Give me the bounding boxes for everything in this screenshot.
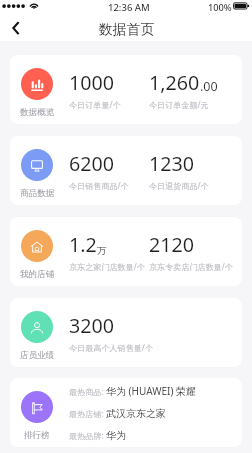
staticText: 今日订单金额/元 [149, 99, 209, 110]
staticText: 6200 [69, 150, 115, 177]
staticText: 我的店铺 [20, 269, 55, 280]
staticText: 华为 (HUAWEI) 荣耀Mate10... [106, 384, 239, 398]
staticText: 100% [208, 1, 232, 14]
staticText: 京东专卖店门店数量/个 [149, 261, 233, 272]
staticText: 今日销售商品/个 [69, 180, 129, 191]
staticText: 1.2 [69, 231, 97, 258]
staticText: 京东之家门店数量/个 [69, 261, 145, 272]
staticText: 武汉京东之家 [106, 407, 166, 420]
staticText: 1000 [69, 69, 115, 96]
staticText: 数据首页 [99, 21, 155, 38]
staticText: 最热品牌: [69, 430, 106, 441]
staticText: 3200 [69, 312, 115, 339]
staticText: 1,260 [149, 69, 200, 96]
staticText: 商品数据 [20, 188, 55, 199]
button[interactable]: 商品数据 [10, 136, 242, 205]
button[interactable]: 我的店铺 [10, 217, 242, 286]
staticText: .00 [200, 78, 218, 95]
button[interactable]: Back [0, 16, 32, 41]
staticText: 排行榜 [24, 430, 50, 441]
staticText: 12:36 AM [108, 1, 150, 14]
button[interactable]: 店员业绩 [10, 298, 242, 367]
staticText: 今日最高个人销售量/个 [69, 342, 153, 353]
staticText: 1230 [149, 150, 195, 177]
button[interactable]: 排行榜 [10, 378, 242, 447]
staticText: 华为 [106, 429, 126, 442]
button[interactable]: 数据概览 [10, 55, 242, 124]
staticText: 万 [97, 245, 107, 257]
staticText: 今日退货商品/个 [149, 180, 209, 191]
staticText: 最热商品: [69, 386, 106, 397]
staticText: 最热店铺: [69, 408, 106, 419]
staticText: 2120 [149, 231, 195, 258]
staticText: 数据概览 [20, 107, 55, 118]
staticText: 今日订单量/个 [69, 99, 121, 110]
staticText: 店员业绩 [20, 350, 55, 361]
